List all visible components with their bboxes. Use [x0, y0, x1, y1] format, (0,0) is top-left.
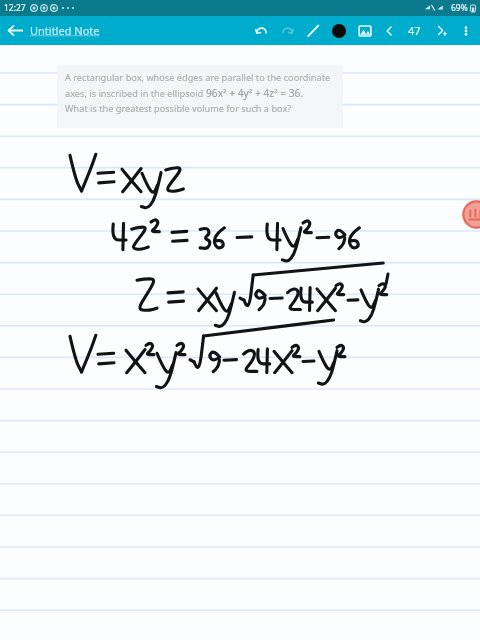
staticText: 69%	[451, 2, 468, 14]
staticText: 12:27	[4, 2, 26, 14]
button[interactable]: Redo	[274, 16, 300, 45]
staticText: 96x² + 4y² + 4z² = 36.	[206, 86, 304, 100]
button[interactable]: Undo	[248, 16, 274, 45]
button[interactable]: Untitled Note	[30, 16, 100, 45]
button[interactable]: Ink color	[326, 16, 352, 45]
button[interactable]: Pen	[300, 16, 326, 45]
staticText: 47	[408, 23, 421, 38]
button[interactable]: A rectangular box, whose edges are paral…	[57, 65, 343, 128]
button[interactable]: Insert image	[352, 16, 378, 45]
button[interactable]: More options	[454, 16, 478, 45]
staticText: A rectangular box, whose edges are paral…	[65, 71, 331, 84]
button[interactable]: Back	[0, 16, 30, 45]
button[interactable]: Assistant	[462, 200, 480, 229]
button[interactable]: Add page	[428, 16, 454, 45]
staticText: What is the greatest possible volume for…	[65, 102, 292, 115]
button[interactable]: Previous page	[378, 16, 400, 45]
staticText: Untitled Note	[30, 23, 100, 38]
button[interactable]: 47	[400, 16, 428, 45]
staticText: axes, is inscribed in the ellipsoid	[65, 87, 206, 100]
